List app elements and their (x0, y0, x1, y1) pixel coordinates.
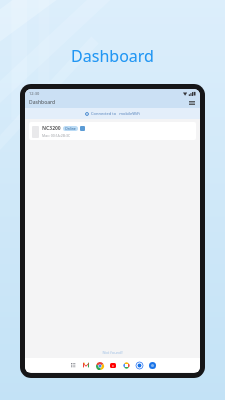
button[interactable]: NC3200 (29, 122, 196, 140)
button[interactable]: App (148, 361, 156, 369)
button[interactable]: YouTube (109, 361, 117, 369)
staticText: Not found! (25, 350, 200, 355)
staticText: Mac: 00:1A:2B:3C (42, 133, 71, 138)
staticText: NC3200 (42, 125, 61, 132)
button[interactable]: Chrome (95, 361, 104, 370)
button[interactable]: All apps (69, 361, 77, 369)
staticText: 12:30 (29, 91, 40, 96)
button[interactable]: Device info (80, 126, 85, 131)
button[interactable]: Google Photos (122, 361, 130, 369)
staticText: Dashboard (71, 45, 154, 67)
staticText: Dashboard (29, 99, 56, 106)
button[interactable]: Meet (135, 361, 143, 369)
button[interactable]: More options (187, 98, 196, 107)
button[interactable]: Gmail (82, 361, 90, 369)
staticText: Online (65, 126, 76, 131)
staticText: Connected to mobileWiFi (91, 111, 141, 116)
button[interactable]: Connected to mobileWiFi (25, 108, 200, 119)
